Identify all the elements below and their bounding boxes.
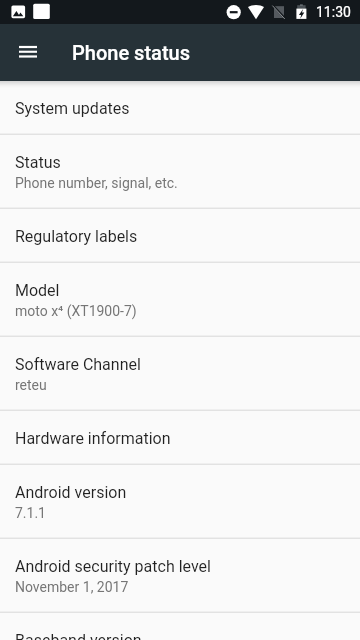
staticText: Android version: [15, 483, 127, 502]
staticText: Status: [15, 153, 61, 172]
staticText: Software Channel: [15, 355, 141, 374]
staticText: 7.1.1: [15, 505, 46, 521]
staticText: Model: [15, 281, 60, 300]
button[interactable]: Android security patch level: [0, 539, 360, 613]
staticText: System updates: [15, 99, 130, 118]
button[interactable]: Hardware information: [0, 411, 360, 465]
staticText: Regulatory labels: [15, 227, 138, 246]
button[interactable]: Model: [0, 263, 360, 337]
button[interactable]: Baseband version: [0, 613, 360, 640]
staticText: reteu: [15, 377, 47, 393]
staticText: November 1, 2017: [15, 579, 129, 595]
staticText: 11:30: [316, 4, 351, 20]
staticText: Android security patch level: [15, 557, 211, 576]
button[interactable]: System updates: [0, 81, 360, 135]
staticText: Phone number, signal, etc.: [15, 175, 178, 191]
button[interactable]: Regulatory labels: [0, 209, 360, 263]
staticText: moto x⁴ (XT1900-7): [15, 303, 137, 319]
staticText: Phone status: [72, 41, 191, 64]
button[interactable]: Android version: [0, 465, 360, 539]
button[interactable]: Status: [0, 135, 360, 209]
staticText: Hardware information: [15, 429, 171, 448]
button[interactable]: Software Channel: [0, 337, 360, 411]
staticText: Baseband version: [15, 631, 142, 640]
button[interactable]: Open navigation drawer: [0, 24, 56, 80]
